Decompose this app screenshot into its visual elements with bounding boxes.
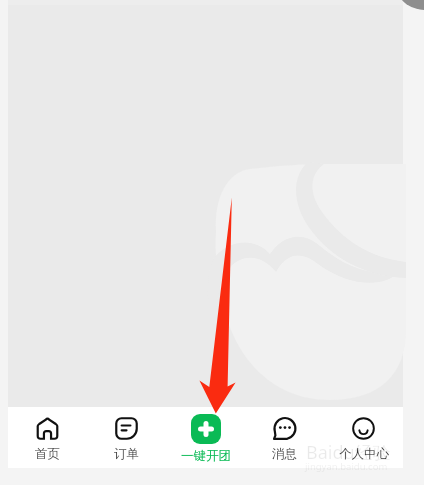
other: Messages (273, 417, 296, 440)
button[interactable]: 一键开团 (166, 407, 245, 468)
staticText: 首页 (35, 446, 60, 462)
staticText: Baidu经验 (306, 440, 391, 465)
other: Profile (352, 417, 375, 440)
button[interactable]: Messages (245, 407, 324, 468)
staticText: 消息 (272, 446, 297, 462)
staticText: jingyan.baidu.com (305, 460, 388, 473)
staticText: 个人中心 (339, 446, 389, 462)
other: Home (36, 417, 59, 440)
staticText: 一键开团 (181, 448, 231, 464)
button[interactable]: Orders (87, 407, 166, 468)
button[interactable]: Profile (324, 407, 403, 468)
other: Orders (115, 417, 138, 440)
staticText: 订单 (114, 446, 139, 462)
button[interactable]: Home (8, 407, 87, 468)
